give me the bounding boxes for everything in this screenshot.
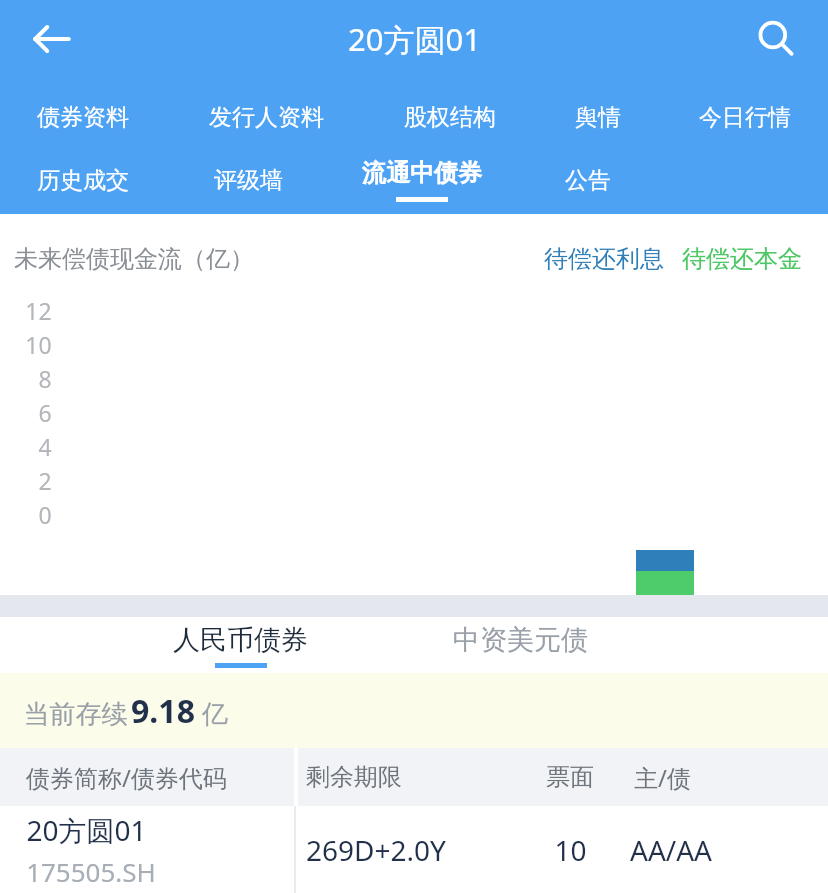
staticText: 20方圆01 bbox=[26, 811, 147, 849]
staticText: 评级墙 bbox=[214, 166, 283, 195]
staticText: 4 bbox=[38, 431, 52, 462]
staticText: 12 bbox=[25, 295, 52, 326]
staticText: 当前存续 bbox=[20, 695, 131, 731]
button[interactable]: 发行人资料 bbox=[165, 88, 367, 146]
staticText: 10 bbox=[554, 831, 587, 869]
button[interactable]: 舆情 bbox=[533, 88, 662, 146]
staticText: 债券资料 bbox=[37, 103, 129, 132]
button[interactable]: Search bbox=[742, 5, 810, 73]
staticText: 舆情 bbox=[575, 103, 621, 132]
staticText: 人民币债券 bbox=[173, 623, 308, 657]
staticText: 待偿还利息 bbox=[544, 244, 664, 274]
staticText: 公告 bbox=[565, 166, 611, 195]
staticText: 269D+2.0Y bbox=[306, 831, 446, 869]
button[interactable]: 人民币债券 bbox=[100, 617, 380, 673]
staticText: 2024 bbox=[636, 742, 694, 776]
staticText: 剩余期限 bbox=[306, 762, 402, 792]
button[interactable]: 今日行情 bbox=[662, 88, 828, 146]
staticText: 6 bbox=[38, 397, 52, 428]
staticText: 历史成交 bbox=[37, 166, 129, 195]
staticText: 发行人资料 bbox=[209, 103, 324, 132]
staticText: 2 bbox=[38, 465, 52, 496]
button[interactable]: 公告 bbox=[513, 152, 662, 208]
staticText: 2022 bbox=[147, 742, 205, 776]
button[interactable]: 中资美元债 bbox=[380, 617, 660, 673]
staticText: 票面 bbox=[546, 762, 594, 792]
staticText: 流通中债券 bbox=[362, 158, 482, 188]
staticText: 主/债 bbox=[634, 761, 691, 794]
button[interactable]: 历史成交 bbox=[0, 152, 165, 208]
button[interactable]: 债券资料 bbox=[0, 88, 165, 146]
staticText: 债券简称/债券代码 bbox=[26, 761, 227, 794]
staticText: 待偿还本金 bbox=[682, 244, 802, 274]
staticText: 今日行情 bbox=[699, 103, 791, 132]
staticText: 10 bbox=[25, 329, 52, 360]
staticText: 8 bbox=[38, 363, 52, 394]
staticText: 未来偿债现金流（亿） bbox=[14, 244, 254, 274]
staticText: 2023 bbox=[391, 742, 449, 776]
button[interactable]: 评级墙 bbox=[165, 152, 331, 208]
staticText: 0 bbox=[38, 499, 52, 530]
staticText: AA/AA bbox=[630, 831, 712, 869]
button[interactable]: 流通中债券 bbox=[331, 152, 513, 208]
staticText: 亿 bbox=[195, 695, 228, 731]
staticText: 20方圆01 bbox=[348, 18, 481, 60]
staticText: 中资美元债 bbox=[453, 623, 588, 657]
button[interactable]: 20方圆01 bbox=[0, 806, 828, 893]
staticText: 175505.SH bbox=[26, 854, 156, 889]
staticText: 股权结构 bbox=[404, 103, 496, 132]
button[interactable]: Back bbox=[18, 5, 86, 73]
staticText: 9.18 bbox=[131, 689, 195, 733]
button[interactable]: 股权结构 bbox=[367, 88, 533, 146]
